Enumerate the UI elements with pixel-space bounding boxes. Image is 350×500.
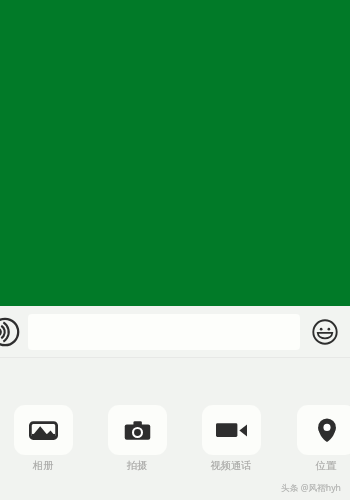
button[interactable]: 视频通话 [191, 405, 271, 472]
button[interactable]: Voice message [0, 313, 24, 351]
staticText: 视频通话 [191, 459, 271, 472]
button[interactable]: Emoji [306, 313, 344, 351]
staticText: 头条 @风褶hyh [281, 482, 341, 494]
staticText: 位置 [286, 459, 350, 472]
button[interactable]: 相册 [3, 405, 83, 472]
staticText: 相册 [3, 459, 83, 472]
button[interactable]: 拍摄 [97, 405, 177, 472]
button[interactable]: 位置 [286, 405, 350, 472]
staticText: 拍摄 [97, 459, 177, 472]
